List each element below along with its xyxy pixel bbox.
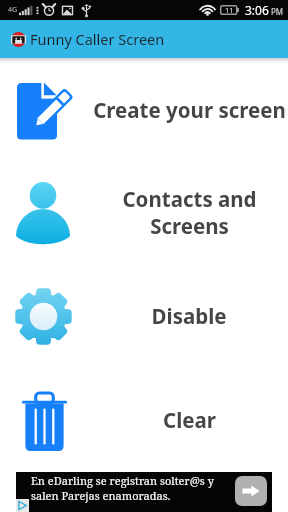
button[interactable]: Clear xyxy=(0,368,288,472)
staticText: PM xyxy=(271,6,284,17)
button[interactable]: Disable xyxy=(0,264,288,368)
staticText: Contacts and Screens xyxy=(122,185,257,240)
staticText: 4G xyxy=(8,5,18,15)
button[interactable]: Contacts and Screens xyxy=(0,161,288,264)
button[interactable]: En eDarling se registran solter@s y xyxy=(16,472,272,512)
staticText: Funny Caller Screen xyxy=(30,29,165,49)
button[interactable]: Create your screen xyxy=(0,58,288,161)
button[interactable]: Open advertisement xyxy=(235,476,267,506)
staticText: Clear xyxy=(163,406,216,434)
staticText: Disable xyxy=(151,302,227,330)
staticText: En eDarling se registran solter@s y xyxy=(31,473,214,488)
staticText: Create your screen xyxy=(93,96,286,124)
staticText: salen Parejas enamoradas. xyxy=(31,488,171,503)
staticText: 11 xyxy=(225,5,234,15)
staticText: 3:06 xyxy=(245,2,269,18)
